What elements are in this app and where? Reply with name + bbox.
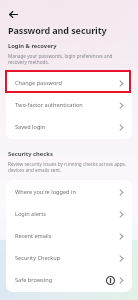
staticText: Password and security bbox=[8, 24, 107, 36]
staticText: Change password bbox=[15, 79, 118, 87]
staticText: Where you're logged in bbox=[15, 188, 118, 196]
staticText: Login alerts bbox=[15, 210, 118, 218]
staticText: Saved login bbox=[15, 123, 118, 131]
button[interactable]: Change password bbox=[6, 72, 132, 94]
button[interactable]: Login alerts bbox=[6, 203, 132, 225]
staticText: Security checks bbox=[8, 150, 53, 158]
button[interactable]: Safe browsing bbox=[6, 269, 132, 291]
staticText: Safe browsing bbox=[15, 276, 106, 284]
button[interactable]: Two-factor authentication bbox=[6, 94, 132, 116]
button[interactable]: Security Checkup bbox=[6, 247, 132, 269]
button[interactable]: Recent emails bbox=[6, 225, 132, 247]
staticText: Manage your passwords, login preferences… bbox=[8, 53, 131, 65]
staticText: Login & recovery bbox=[8, 42, 57, 50]
button[interactable]: Where you're logged in bbox=[6, 181, 132, 203]
staticText: Two-factor authentication bbox=[15, 101, 118, 109]
button[interactable]: Saved login bbox=[6, 116, 132, 138]
button[interactable]: Back bbox=[5, 6, 21, 22]
staticText: Review security issues by running checks… bbox=[8, 161, 131, 173]
staticText: Recent emails bbox=[15, 232, 118, 240]
staticText: Security Checkup bbox=[15, 254, 118, 262]
